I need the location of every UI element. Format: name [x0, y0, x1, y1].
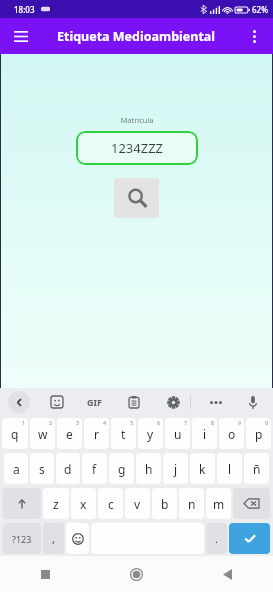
button[interactable]: i	[192, 418, 217, 449]
button[interactable]: More	[204, 390, 228, 414]
staticText: 0	[265, 419, 269, 426]
button[interactable]: Back	[182, 556, 273, 592]
button[interactable]: GIF	[81, 390, 107, 414]
staticText: g	[118, 461, 126, 477]
staticText: 62%	[252, 4, 268, 15]
button[interactable]: Period	[206, 523, 227, 554]
staticText: j	[174, 461, 178, 477]
button[interactable]: e	[57, 418, 82, 449]
staticText: m	[213, 496, 225, 512]
staticText: o	[228, 426, 236, 442]
button[interactable]: Open navigation menu	[8, 23, 34, 49]
button[interactable]: Home	[91, 556, 182, 592]
button[interactable]: a	[4, 453, 28, 484]
button[interactable]: ñ	[244, 453, 269, 484]
button[interactable]: g	[109, 453, 134, 484]
button[interactable]: Settings	[161, 390, 185, 414]
staticText: p	[255, 426, 263, 442]
button[interactable]: d	[56, 453, 80, 484]
button[interactable]: Stickers	[45, 390, 69, 414]
staticText: 7	[184, 419, 188, 426]
staticText: .	[215, 531, 218, 546]
staticText: ?123	[12, 533, 32, 545]
button[interactable]: j	[163, 453, 188, 484]
button[interactable]: f	[82, 453, 107, 484]
staticText: c	[108, 496, 114, 512]
staticText: w	[38, 426, 48, 442]
button[interactable]: More options	[241, 23, 267, 49]
button[interactable]: Voice input	[241, 390, 265, 414]
staticText: v	[134, 496, 141, 512]
button[interactable]: ?123	[3, 523, 41, 554]
button[interactable]: Done	[229, 523, 270, 554]
staticText: s	[39, 461, 45, 477]
button[interactable]: p	[246, 418, 271, 449]
button[interactable]: w	[30, 418, 55, 449]
staticText: x	[80, 496, 87, 512]
button[interactable]: s	[30, 453, 54, 484]
staticText: 6	[157, 419, 161, 426]
button[interactable]: Search	[114, 178, 159, 218]
staticText: 1	[22, 419, 26, 426]
staticText: l	[228, 461, 232, 477]
staticText: ,	[52, 531, 55, 546]
staticText: Matrícula	[120, 115, 154, 125]
staticText: 1234ZZZ	[111, 139, 164, 157]
staticText: z	[53, 496, 59, 512]
staticText: 4	[103, 419, 107, 426]
button[interactable]: x	[71, 488, 96, 519]
button[interactable]: c	[98, 488, 123, 519]
button[interactable]: Emoji	[66, 523, 89, 554]
button[interactable]: l	[217, 453, 242, 484]
button[interactable]: Recent apps	[0, 556, 91, 592]
button[interactable]: k	[190, 453, 215, 484]
button[interactable]: b	[152, 488, 177, 519]
staticText: i	[203, 426, 207, 442]
staticText: 2	[49, 419, 53, 426]
staticText: GIF	[87, 396, 102, 408]
staticText: n	[188, 496, 196, 512]
staticText: h	[145, 461, 153, 477]
staticText: u	[174, 426, 182, 442]
button[interactable]: u	[165, 418, 190, 449]
staticText: b	[161, 496, 169, 512]
button[interactable]: q	[2, 418, 28, 449]
button[interactable]: v	[125, 488, 150, 519]
staticText: f	[92, 461, 97, 477]
staticText: r	[94, 426, 99, 442]
staticText: 8	[211, 419, 215, 426]
button[interactable]: m	[206, 488, 231, 519]
button[interactable]: o	[219, 418, 244, 449]
staticText: ñ	[253, 461, 261, 477]
button[interactable]: y	[138, 418, 163, 449]
staticText: e	[66, 426, 73, 442]
staticText: 5	[130, 419, 134, 426]
staticText: 3	[76, 419, 80, 426]
staticText: q	[11, 426, 19, 442]
button[interactable]: Shift	[3, 488, 41, 519]
button[interactable]: Comma	[43, 523, 64, 554]
button[interactable]: r	[84, 418, 109, 449]
staticText: a	[13, 461, 20, 477]
button[interactable]: 1234ZZZ	[76, 131, 198, 165]
button[interactable]: Clipboard	[122, 390, 146, 414]
button[interactable]: z	[43, 488, 69, 519]
button[interactable]: n	[179, 488, 204, 519]
button[interactable]: h	[136, 453, 161, 484]
staticText: 18:03	[14, 4, 35, 15]
button[interactable]: Backspace	[233, 488, 270, 519]
staticText: t	[121, 426, 126, 442]
button[interactable]: t	[111, 418, 136, 449]
staticText: 9	[238, 419, 242, 426]
staticText: Etiqueta Medioambiental	[57, 28, 216, 45]
staticText: y	[147, 426, 154, 442]
staticText: d	[64, 461, 72, 477]
button[interactable]: Back	[8, 391, 30, 413]
staticText: k	[199, 461, 206, 477]
